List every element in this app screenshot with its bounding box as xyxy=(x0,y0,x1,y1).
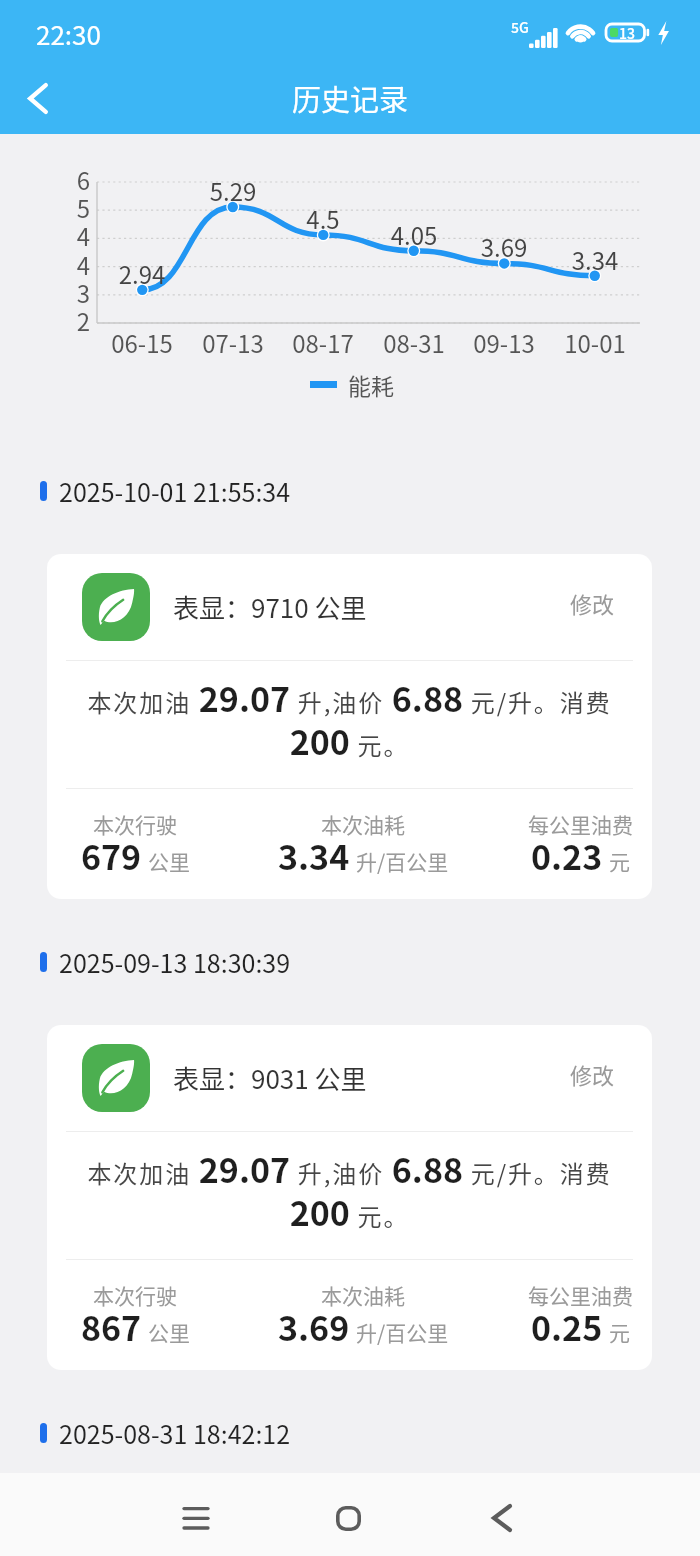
staticText: 679 xyxy=(81,831,142,880)
staticText: 2025-10-01 21:55:34 xyxy=(59,473,291,509)
staticText: 升/百公里 xyxy=(356,1317,449,1347)
staticText: 08-31 xyxy=(369,325,459,360)
staticText: 表显：9710 公里 xyxy=(173,588,367,626)
staticText: 修改 xyxy=(570,1058,615,1090)
staticText: 5.29 xyxy=(203,173,263,208)
staticText: 2.94 xyxy=(112,256,172,291)
staticText: 2025-09-13 18:30:39 xyxy=(59,944,291,980)
staticText: 公里 xyxy=(148,846,190,876)
staticText: 3.34 xyxy=(565,242,625,277)
staticText: 本次行驶 xyxy=(93,809,177,839)
staticText: 09-13 xyxy=(459,325,549,360)
staticText: 06-15 xyxy=(97,325,187,360)
staticText: 4 xyxy=(64,247,90,282)
staticText: 升/百公里 xyxy=(356,846,449,876)
button[interactable]: Back xyxy=(12,72,64,124)
staticText: 0.25 xyxy=(531,1302,603,1351)
button[interactable]: 表显：9710 公里 xyxy=(47,554,652,899)
button[interactable]: Back xyxy=(466,1485,538,1551)
staticText: 4.5 xyxy=(293,201,353,236)
staticText: 6 xyxy=(64,162,90,197)
staticText: 公里 xyxy=(148,1317,190,1347)
staticText: 10-01 xyxy=(550,325,640,360)
staticText: 2025-08-31 18:42:12 xyxy=(59,1415,291,1451)
staticText: 5G xyxy=(511,17,529,37)
staticText: 元 xyxy=(609,846,630,876)
staticText: 4.05 xyxy=(384,217,444,252)
staticText: 2 xyxy=(64,303,90,338)
staticText: 能耗 xyxy=(348,368,394,401)
button[interactable]: Home xyxy=(312,1485,384,1551)
staticText: 867 xyxy=(81,1302,142,1351)
staticText: 历史记录 xyxy=(292,77,409,119)
staticText: 3 xyxy=(64,275,90,310)
staticText: 5 xyxy=(64,190,90,225)
staticText: 0.23 xyxy=(531,831,603,880)
staticText: 本次油耗 xyxy=(321,809,405,839)
button[interactable]: Recent apps xyxy=(160,1486,232,1552)
staticText: 每公里油费 xyxy=(528,1280,633,1310)
staticText: 3.69 xyxy=(474,229,534,264)
staticText: 每公里油费 xyxy=(528,809,633,839)
staticText: 3.34 xyxy=(278,831,350,880)
staticText: 元 xyxy=(609,1317,630,1347)
staticText: 本次油耗 xyxy=(321,1280,405,1310)
staticText: 13 xyxy=(619,23,635,42)
staticText: 修改 xyxy=(570,587,615,619)
staticText: 本次加油 29.07 升,油价 6.88 元/升。消费 200 元。 xyxy=(75,1144,624,1236)
staticText: 表显：9031 公里 xyxy=(173,1059,367,1097)
staticText: 本次加油 29.07 升,油价 6.88 元/升。消费 200 元。 xyxy=(75,673,624,765)
staticText: 08-17 xyxy=(278,325,368,360)
button[interactable]: 表显：9031 公里 xyxy=(47,1025,652,1370)
staticText: 07-13 xyxy=(188,325,278,360)
staticText: 本次行驶 xyxy=(93,1280,177,1310)
staticText: 22:30 xyxy=(36,15,101,53)
staticText: 3.69 xyxy=(278,1302,350,1351)
staticText: 4 xyxy=(64,218,90,253)
